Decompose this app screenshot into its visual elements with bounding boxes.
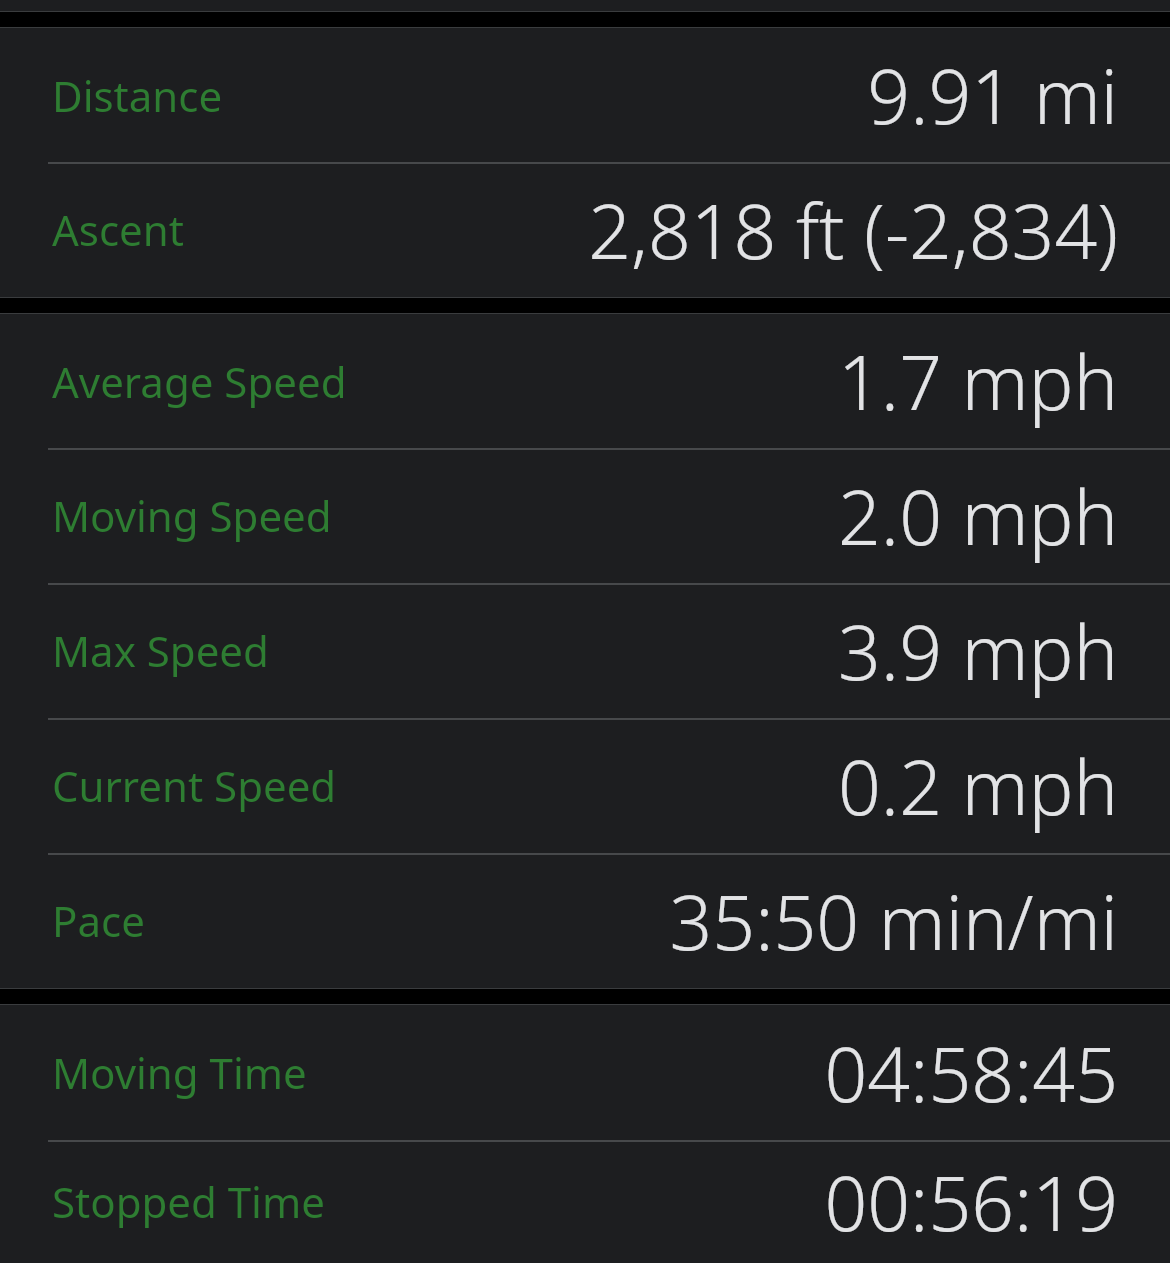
button[interactable]: Distance — [0, 28, 1170, 162]
staticText: 2.0 mph — [838, 465, 1118, 567]
staticText: 04:58:45 — [824, 1022, 1118, 1124]
staticText: 3.9 mph — [838, 600, 1118, 702]
staticText: 9.91 mi — [867, 44, 1118, 146]
staticText: 2,818 ft (-2,834) — [588, 179, 1118, 281]
staticText: 0.2 mph — [838, 735, 1118, 837]
staticText: Moving Speed — [52, 487, 332, 544]
staticText: Average Speed — [52, 353, 347, 410]
button[interactable]: Ascent — [0, 162, 1170, 297]
staticText: 00:56:19 — [824, 1151, 1118, 1253]
staticText: Current Speed — [52, 757, 337, 814]
staticText: 35:50 min/mi — [669, 870, 1118, 972]
staticText: Distance — [52, 67, 223, 124]
button[interactable]: Moving Time — [0, 1005, 1170, 1140]
button[interactable]: Stopped Time — [0, 1140, 1170, 1263]
staticText: Moving Time — [52, 1044, 307, 1101]
button[interactable]: Moving Speed — [0, 448, 1170, 583]
staticText: Pace — [52, 892, 145, 949]
button[interactable]: Current Speed — [0, 718, 1170, 853]
staticText: Stopped Time — [52, 1173, 325, 1230]
staticText: Max Speed — [52, 622, 269, 679]
staticText: 1.7 mph — [838, 330, 1118, 432]
button[interactable]: Max Speed — [0, 583, 1170, 718]
button[interactable]: Average Speed — [0, 314, 1170, 448]
staticText: Ascent — [52, 201, 184, 258]
button[interactable]: Pace — [0, 853, 1170, 988]
